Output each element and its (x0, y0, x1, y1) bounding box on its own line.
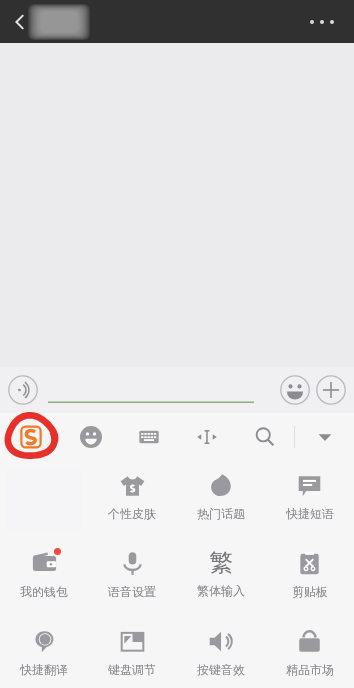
button[interactable]: 语音设置 (88, 538, 176, 616)
button[interactable]: 按键音效 (176, 616, 265, 688)
button[interactable]: Search (236, 413, 294, 460)
staticText: 热门话题 (197, 506, 245, 521)
staticText: 按键音效 (197, 662, 245, 677)
button[interactable] (44, 373, 256, 407)
staticText: 我的钱包 (20, 584, 68, 599)
button[interactable]: Emoji (280, 375, 310, 405)
button[interactable]: 剪贴板 (265, 538, 354, 616)
button[interactable]: Sogou menu (0, 413, 62, 460)
button[interactable]: Keyboard (120, 413, 178, 460)
button[interactable]: 快捷短语 (265, 460, 354, 538)
button[interactable]: 我的钱包 (0, 538, 88, 616)
button[interactable]: More options (300, 2, 344, 42)
button[interactable]: 键盘调节 (88, 616, 176, 688)
button[interactable]: 快捷翻译 (0, 616, 88, 688)
button[interactable]: Voice input (8, 375, 38, 405)
button[interactable]: Back (0, 2, 40, 42)
button[interactable]: 热门话题 (176, 460, 265, 538)
button[interactable]: Add attachment (316, 375, 346, 405)
staticText: 繁 (209, 548, 233, 577)
button[interactable]: 精品市场 (265, 616, 354, 688)
staticText: 剪贴板 (292, 584, 328, 599)
button[interactable]: 个性皮肤 (88, 460, 176, 538)
staticText: 语音设置 (108, 584, 156, 599)
button[interactable]: Collapse keyboard (295, 413, 354, 460)
staticText: 快捷翻译 (20, 662, 68, 677)
staticText: 个性皮肤 (108, 506, 156, 521)
staticText: 快捷短语 (286, 506, 334, 521)
button[interactable]: Move cursor (178, 413, 236, 460)
staticText: 精品市场 (286, 662, 334, 677)
staticText: 键盘调节 (108, 662, 156, 677)
staticText: 繁体输入 (197, 583, 245, 598)
button[interactable]: Emoji keyboard (62, 413, 120, 460)
button[interactable]: 繁 (176, 538, 265, 616)
